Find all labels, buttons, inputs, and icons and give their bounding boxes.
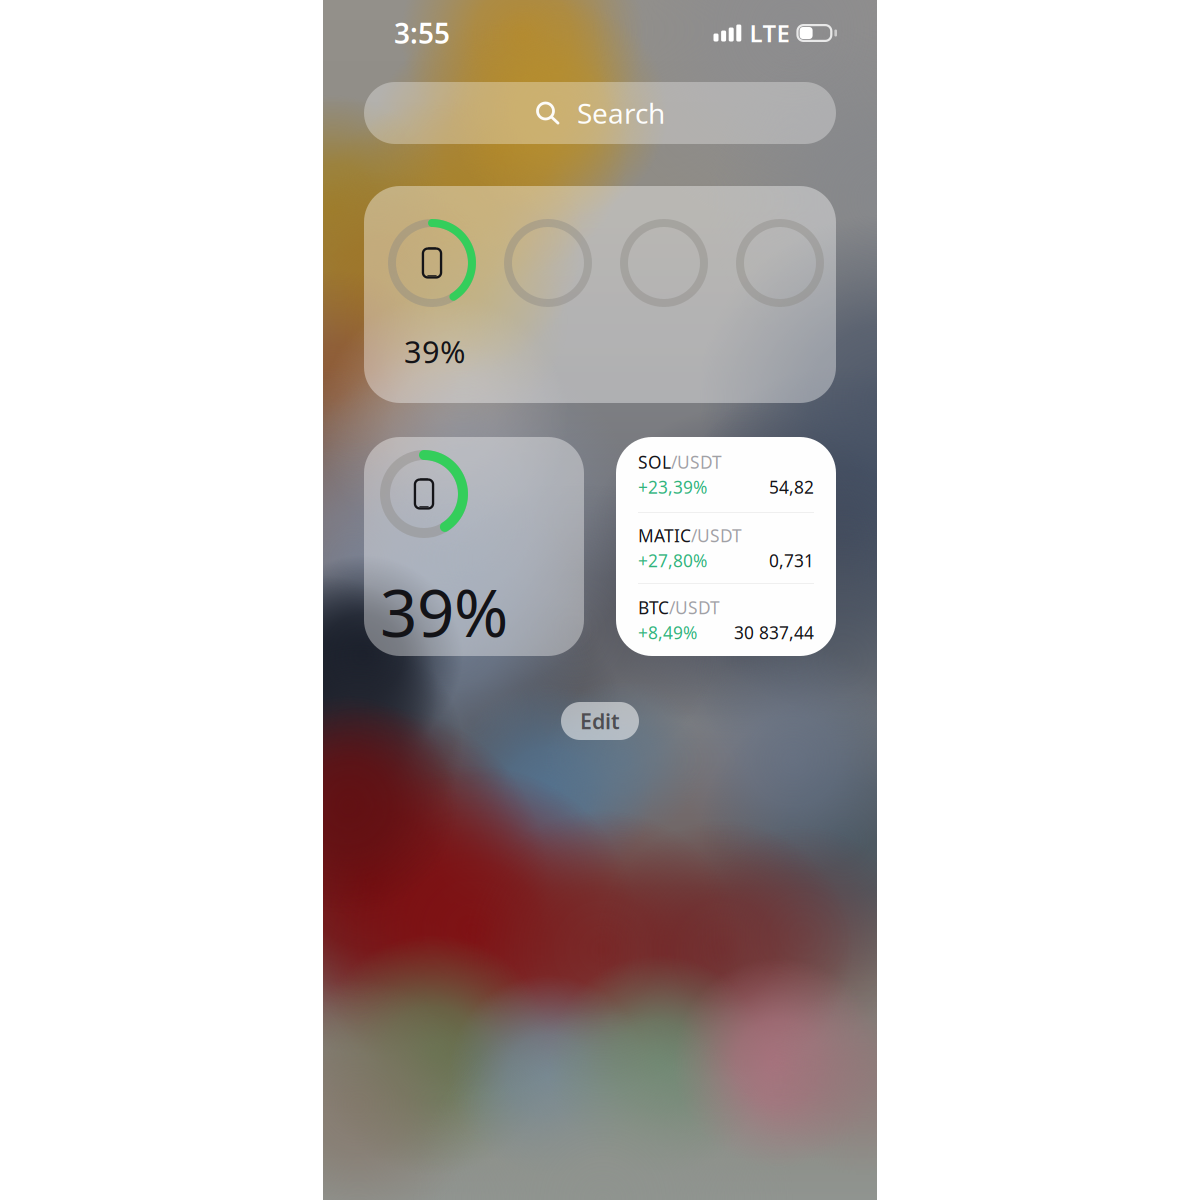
staticText: 39% bbox=[404, 331, 465, 372]
staticText: +23,39% bbox=[638, 475, 707, 498]
staticText: 0,731 bbox=[769, 549, 814, 572]
staticText: 39% bbox=[380, 568, 508, 655]
staticText: /USDT bbox=[671, 450, 722, 473]
button[interactable]: 39% bbox=[364, 186, 836, 403]
button[interactable]: Search bbox=[364, 82, 836, 144]
button[interactable]: 39% bbox=[364, 437, 584, 656]
staticText: 3:55 bbox=[394, 14, 450, 52]
staticText: Search bbox=[577, 94, 665, 132]
staticText: /USDT bbox=[691, 524, 742, 547]
staticText: /USDT bbox=[669, 596, 720, 619]
staticText: LTE bbox=[749, 17, 789, 49]
staticText: SOL bbox=[638, 450, 671, 473]
staticText: Edit bbox=[580, 707, 620, 735]
staticText: 54,82 bbox=[769, 475, 814, 498]
staticText: +27,80% bbox=[638, 549, 707, 572]
staticText: 30 837,44 bbox=[734, 621, 814, 644]
button[interactable]: Edit bbox=[561, 702, 639, 740]
staticText: BTC bbox=[638, 596, 669, 619]
staticText: +8,49% bbox=[638, 621, 697, 644]
staticText: MATIC bbox=[638, 524, 691, 547]
button[interactable]: SOL bbox=[616, 437, 836, 656]
